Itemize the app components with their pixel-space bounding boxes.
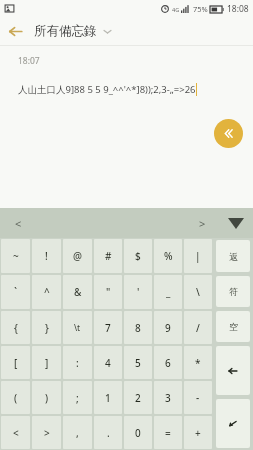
button[interactable]: ! bbox=[32, 239, 61, 273]
staticText: > bbox=[44, 426, 50, 440]
staticText: + bbox=[195, 426, 201, 440]
staticText: 符 bbox=[229, 286, 238, 297]
button[interactable]: @ bbox=[63, 239, 92, 273]
button[interactable]: > bbox=[32, 416, 61, 449]
button[interactable]: + bbox=[184, 416, 212, 449]
staticText: & bbox=[74, 285, 82, 299]
button[interactable]: ~ bbox=[1, 239, 30, 273]
button[interactable]: * bbox=[184, 346, 212, 379]
button[interactable]: ` bbox=[1, 275, 30, 309]
button[interactable]: & bbox=[63, 275, 92, 309]
staticText: / bbox=[196, 321, 200, 335]
staticText: - bbox=[196, 391, 200, 405]
staticText: ) bbox=[45, 391, 49, 405]
staticText: < bbox=[15, 216, 22, 231]
staticText: 空 bbox=[229, 321, 238, 332]
staticText: ] bbox=[45, 356, 49, 370]
button[interactable]: % bbox=[154, 239, 182, 273]
button[interactable]: 5 bbox=[124, 346, 152, 379]
button[interactable]: . bbox=[94, 416, 122, 449]
staticText: } bbox=[45, 321, 49, 335]
staticText: % bbox=[164, 249, 173, 263]
staticText: ' bbox=[137, 285, 140, 299]
staticText: 7 bbox=[105, 321, 111, 335]
staticText: , bbox=[76, 426, 79, 440]
button[interactable]: 7 bbox=[94, 311, 122, 344]
button[interactable]: 1 bbox=[94, 381, 122, 414]
staticText: 9 bbox=[165, 321, 171, 335]
button[interactable]: ) bbox=[32, 381, 61, 414]
button[interactable]: ' bbox=[124, 275, 152, 309]
button[interactable]: 符 bbox=[216, 276, 250, 307]
staticText: > bbox=[199, 216, 206, 231]
staticText: * bbox=[195, 356, 201, 370]
staticText: 1 bbox=[105, 391, 111, 405]
button[interactable]: ( bbox=[1, 381, 30, 414]
button[interactable]: \t bbox=[63, 311, 92, 344]
button[interactable]: < bbox=[1, 416, 30, 449]
button[interactable]: _ bbox=[154, 275, 182, 309]
button[interactable]: 6 bbox=[154, 346, 182, 379]
staticText: 人山土口人9]88 5 5 9_^^'^*]8));2,3-„=>26 bbox=[18, 83, 196, 96]
staticText: . bbox=[107, 426, 110, 440]
button[interactable]: : bbox=[63, 346, 92, 379]
button[interactable]: 所有備忘錄 bbox=[34, 23, 112, 39]
button[interactable]: Previous field bbox=[0, 208, 36, 238]
button[interactable]: Hide keyboard bbox=[219, 208, 253, 238]
staticText: 6 bbox=[165, 356, 171, 370]
staticText: { bbox=[14, 321, 18, 335]
staticText: [ bbox=[14, 356, 18, 370]
staticText: 4G bbox=[172, 6, 180, 13]
staticText: 5 bbox=[135, 356, 141, 370]
staticText: < bbox=[13, 426, 19, 440]
staticText: ~ bbox=[13, 249, 19, 263]
staticText: : bbox=[76, 356, 79, 370]
button[interactable]: Backspace bbox=[216, 346, 250, 395]
staticText: 2 bbox=[135, 391, 141, 405]
button[interactable]: { bbox=[1, 311, 30, 344]
button[interactable]: 3 bbox=[154, 381, 182, 414]
button[interactable]: = bbox=[154, 416, 182, 449]
staticText: ` bbox=[14, 285, 18, 299]
staticText: " bbox=[106, 285, 111, 299]
button[interactable]: [ bbox=[1, 346, 30, 379]
button[interactable]: Back bbox=[0, 17, 30, 45]
staticText: \t bbox=[74, 322, 81, 333]
button[interactable]: \ bbox=[184, 275, 212, 309]
staticText: 18:07 bbox=[18, 55, 40, 67]
staticText: ^ bbox=[44, 285, 50, 299]
staticText: 18:08 bbox=[227, 3, 249, 15]
button[interactable]: Previous bbox=[214, 119, 243, 148]
button[interactable]: # bbox=[94, 239, 122, 273]
button[interactable]: 2 bbox=[124, 381, 152, 414]
button[interactable]: 8 bbox=[124, 311, 152, 344]
button[interactable]: ^ bbox=[32, 275, 61, 309]
staticText: 3 bbox=[165, 391, 171, 405]
staticText: 4 bbox=[105, 356, 111, 370]
button[interactable]: Next field bbox=[185, 208, 219, 238]
button[interactable]: 4 bbox=[94, 346, 122, 379]
staticText: 所有備忘錄 bbox=[34, 23, 97, 39]
staticText: ; bbox=[76, 391, 79, 405]
staticText: 返 bbox=[229, 251, 238, 262]
staticText: # bbox=[105, 249, 112, 263]
button[interactable]: 9 bbox=[154, 311, 182, 344]
button[interactable]: ; bbox=[63, 381, 92, 414]
staticText: 0 bbox=[135, 426, 141, 440]
button[interactable]: - bbox=[184, 381, 212, 414]
button[interactable]: / bbox=[184, 311, 212, 344]
button[interactable]: | bbox=[184, 239, 212, 273]
button[interactable]: Enter bbox=[216, 399, 250, 448]
staticText: ( bbox=[14, 391, 18, 405]
button[interactable]: } bbox=[32, 311, 61, 344]
button[interactable]: ] bbox=[32, 346, 61, 379]
button[interactable]: 空 bbox=[216, 311, 250, 342]
staticText: $ bbox=[135, 249, 141, 263]
staticText: \ bbox=[196, 285, 200, 299]
staticText: | bbox=[195, 249, 201, 263]
button[interactable]: $ bbox=[124, 239, 152, 273]
button[interactable]: " bbox=[94, 275, 122, 309]
button[interactable]: 返 bbox=[216, 240, 250, 272]
button[interactable]: 0 bbox=[124, 416, 152, 449]
button[interactable]: , bbox=[63, 416, 92, 449]
